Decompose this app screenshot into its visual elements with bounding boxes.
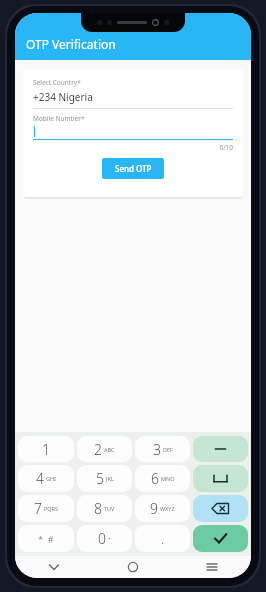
button[interactable] (33, 123, 233, 139)
staticText: OTP Verification (26, 36, 116, 52)
button[interactable]: 9 (135, 495, 190, 522)
staticText: 6 (151, 469, 159, 488)
button[interactable]: 2 (77, 436, 132, 462)
button[interactable]: Backspace (193, 495, 248, 522)
staticText: 2 (94, 440, 102, 459)
staticText: + (108, 535, 112, 542)
button[interactable]: . (135, 525, 190, 552)
staticText: 1 (42, 440, 50, 459)
button[interactable]: 6 (135, 465, 190, 492)
button[interactable]: Hide keyboard (15, 556, 93, 578)
staticText: 5 (96, 469, 104, 488)
staticText: Select Country* (33, 78, 81, 87)
staticText: PQRS (44, 505, 59, 512)
button[interactable]: Recent apps (172, 556, 251, 578)
staticText: 8 (94, 499, 102, 518)
button[interactable]: 1 (18, 436, 74, 462)
staticText: ABC (104, 446, 115, 453)
staticText: 0/10 (33, 143, 233, 152)
staticText: WXYZ (160, 505, 175, 512)
button[interactable]: 3 (135, 436, 190, 462)
button[interactable]: Dash (193, 436, 248, 462)
staticText: Mobile Number* (33, 114, 85, 123)
staticText: DEF (163, 446, 173, 453)
staticText: 4 (36, 469, 44, 488)
staticText: MNO (161, 475, 175, 482)
button[interactable]: 0 (77, 525, 132, 552)
staticText: +234 Nigeria (33, 90, 93, 104)
button[interactable]: Space (193, 465, 248, 492)
staticText: 7 (34, 499, 42, 518)
button[interactable]: * # (18, 525, 74, 552)
staticText: * # (38, 533, 54, 545)
staticText: 0 (98, 529, 106, 548)
button[interactable]: Enter (193, 525, 248, 552)
staticText: JKL (106, 475, 114, 482)
staticText: GHI (46, 475, 56, 482)
staticText: TUV (104, 505, 115, 512)
staticText: 9 (150, 499, 158, 518)
button[interactable]: 5 (77, 465, 132, 492)
button[interactable]: +234 Nigeria (33, 90, 233, 104)
button[interactable]: 8 (77, 495, 132, 522)
button[interactable]: Home (93, 556, 172, 578)
button[interactable]: 7 (18, 495, 74, 522)
staticText: 3 (153, 440, 161, 459)
button[interactable]: Send OTP (102, 158, 164, 179)
staticText: Send OTP (115, 163, 152, 174)
staticText: . (161, 529, 165, 548)
button[interactable]: 4 (18, 465, 74, 492)
